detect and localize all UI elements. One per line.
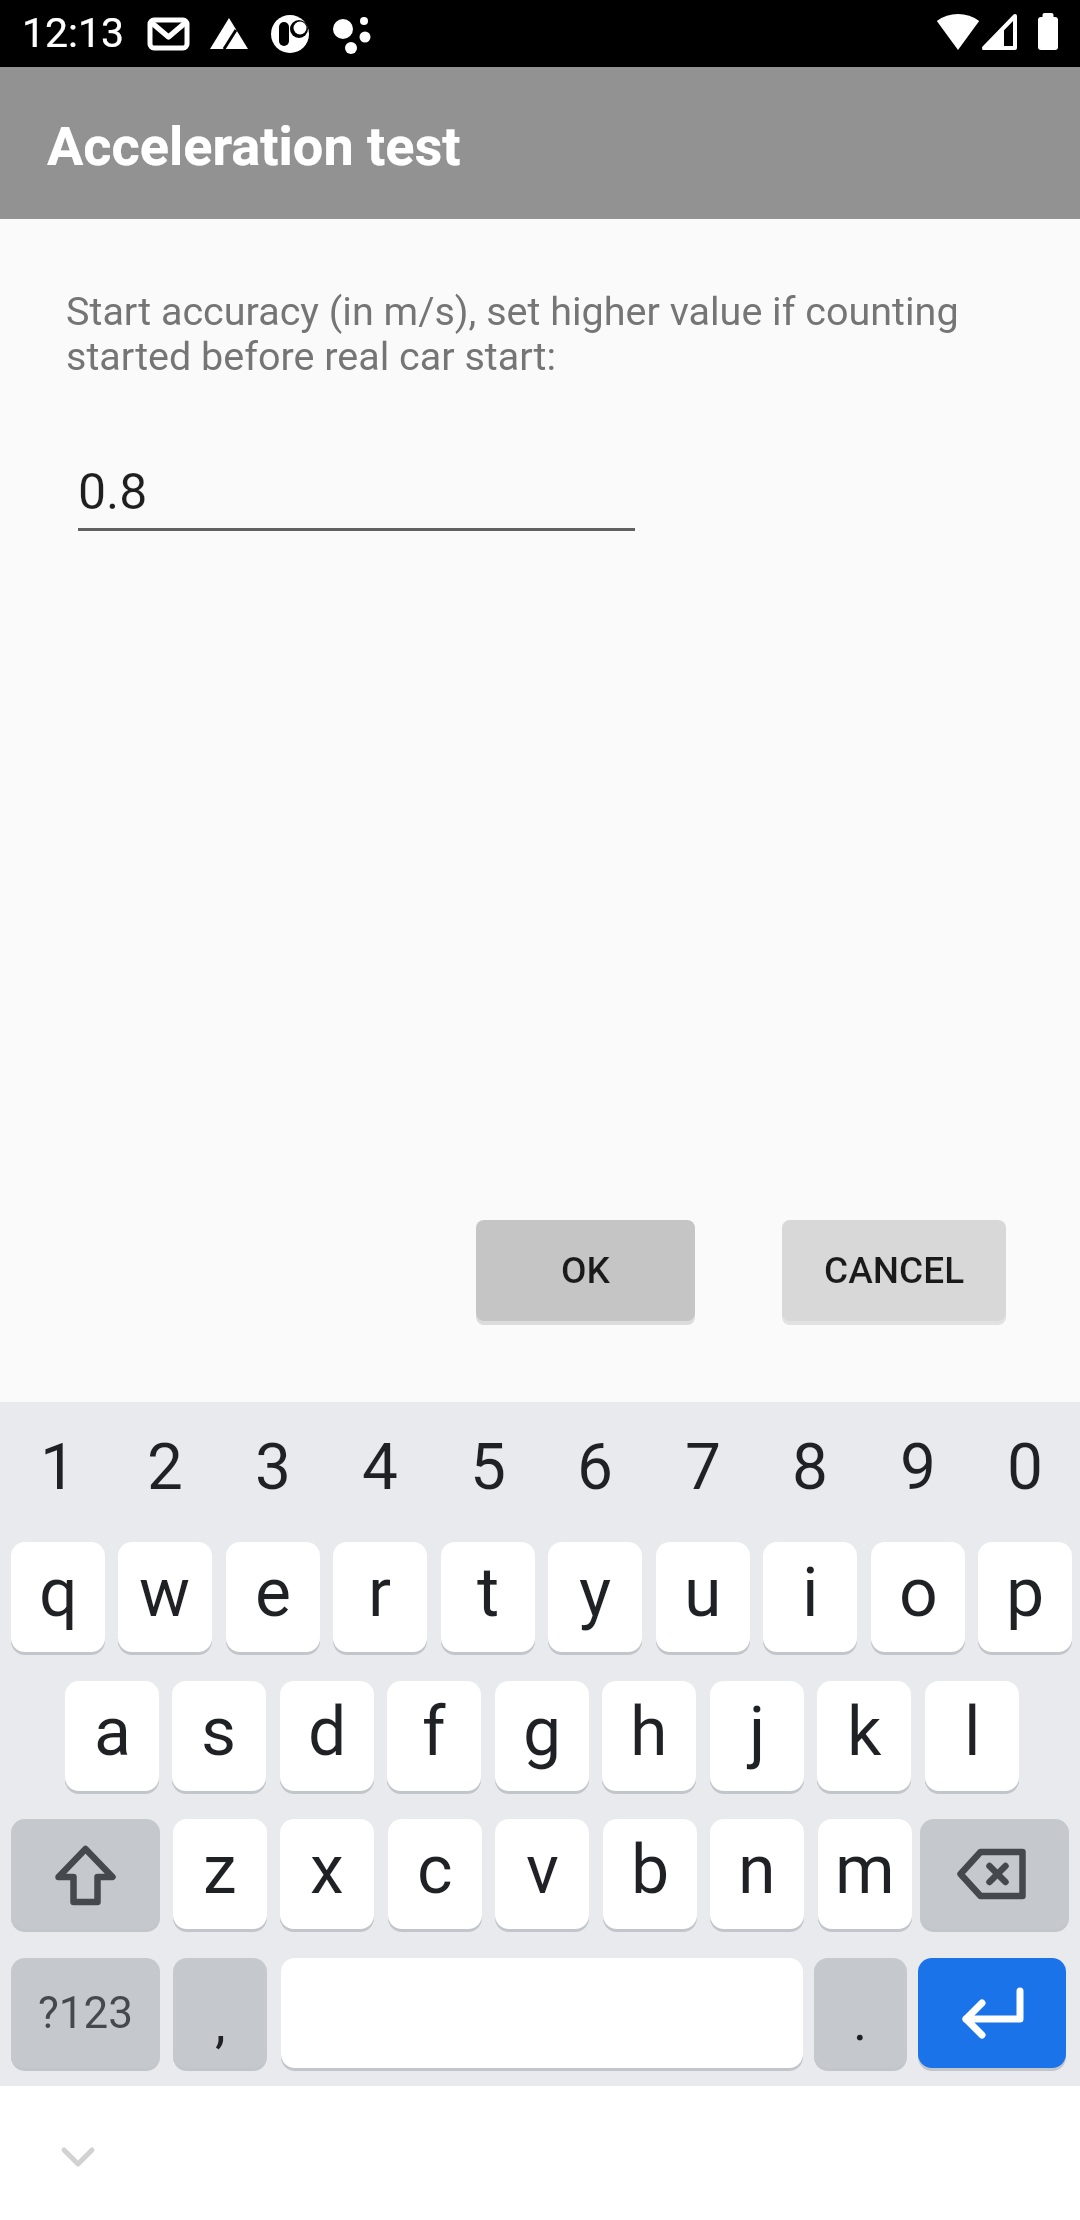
button[interactable]: b	[603, 1819, 697, 1929]
staticText: j	[749, 1692, 766, 1772]
button[interactable]: x	[280, 1819, 374, 1929]
staticText: 9	[900, 1430, 936, 1505]
button[interactable]: r	[333, 1542, 427, 1652]
button[interactable]: o	[871, 1542, 965, 1652]
button[interactable]: 0.8	[66, 440, 636, 540]
button[interactable]: y	[548, 1542, 642, 1652]
button[interactable]: z	[173, 1819, 267, 1929]
staticText: e	[255, 1553, 292, 1633]
button[interactable]: 8	[763, 1412, 857, 1522]
staticText: ,	[215, 1992, 226, 2055]
button[interactable]: l	[925, 1681, 1019, 1791]
button[interactable]: c	[388, 1819, 482, 1929]
staticText: s	[201, 1692, 237, 1772]
button[interactable]: f	[387, 1681, 481, 1791]
staticText: t	[477, 1553, 500, 1633]
staticText: 0.8	[78, 463, 148, 522]
staticText: 3	[255, 1430, 291, 1505]
staticText: z	[203, 1830, 237, 1910]
button[interactable]: .	[814, 1958, 907, 2068]
button[interactable]	[920, 1819, 1069, 1929]
button[interactable]: 0	[978, 1412, 1072, 1522]
staticText: i	[802, 1553, 819, 1633]
button[interactable]	[11, 1819, 160, 1929]
staticText: c	[417, 1830, 453, 1910]
button[interactable]: 5	[441, 1412, 535, 1522]
staticText: 0	[1007, 1430, 1043, 1505]
button[interactable]: OK	[476, 1220, 695, 1321]
staticText: ?123	[38, 1987, 133, 2039]
staticText: n	[738, 1830, 776, 1910]
button[interactable]: t	[441, 1542, 535, 1652]
staticText: v	[526, 1830, 559, 1910]
staticText: q	[39, 1553, 78, 1633]
staticText: 1	[40, 1430, 76, 1505]
button[interactable]: i	[763, 1542, 857, 1652]
button[interactable]: q	[11, 1542, 105, 1652]
staticText: d	[308, 1692, 347, 1772]
button[interactable]: p	[978, 1542, 1072, 1652]
button[interactable]: d	[280, 1681, 374, 1791]
button[interactable]: w	[118, 1542, 212, 1652]
button[interactable]: CANCEL	[782, 1220, 1006, 1321]
button[interactable]: 1	[11, 1412, 105, 1522]
button[interactable]: 4	[333, 1412, 427, 1522]
staticText: Acceleration test	[47, 115, 461, 178]
staticText: l	[964, 1692, 981, 1772]
staticText: 2	[147, 1430, 183, 1505]
staticText: .	[853, 1990, 868, 2053]
staticText: x	[310, 1830, 344, 1910]
staticText: 8	[792, 1430, 828, 1505]
button[interactable]: h	[602, 1681, 696, 1791]
staticText: g	[523, 1692, 562, 1772]
staticText: u	[684, 1553, 722, 1633]
button[interactable]: 2	[118, 1412, 212, 1522]
button[interactable]: ,	[173, 1958, 267, 2068]
staticText: o	[899, 1553, 938, 1633]
staticText: k	[847, 1692, 882, 1772]
staticText: h	[630, 1692, 668, 1772]
staticText: f	[422, 1692, 446, 1772]
staticText: b	[631, 1830, 670, 1910]
button[interactable]: k	[817, 1681, 911, 1791]
staticText: w	[139, 1553, 191, 1633]
button[interactable]: j	[710, 1681, 804, 1791]
button[interactable]	[50, 2134, 106, 2174]
staticText: p	[1006, 1553, 1045, 1633]
staticText: 6	[577, 1430, 613, 1505]
button[interactable]: g	[495, 1681, 589, 1791]
staticText: 12:13	[22, 9, 125, 57]
staticText: a	[94, 1692, 131, 1772]
staticText: Start accuracy (in m/s), set higher valu…	[66, 288, 959, 379]
staticText: r	[368, 1553, 392, 1633]
button[interactable]: u	[656, 1542, 750, 1652]
staticText: CANCEL	[824, 1249, 965, 1292]
button[interactable]: 3	[226, 1412, 320, 1522]
button[interactable]: v	[495, 1819, 589, 1929]
button[interactable]: e	[226, 1542, 320, 1652]
staticText: m	[835, 1830, 895, 1910]
staticText: y	[579, 1553, 612, 1633]
button[interactable]: 9	[871, 1412, 965, 1522]
button[interactable]: 6	[548, 1412, 642, 1522]
button[interactable]: 7	[656, 1412, 750, 1522]
button[interactable]: m	[818, 1819, 912, 1929]
staticText: 7	[685, 1430, 721, 1505]
button[interactable]: a	[65, 1681, 159, 1791]
button[interactable]: s	[172, 1681, 266, 1791]
button[interactable]: ?123	[11, 1958, 160, 2068]
button[interactable]: n	[710, 1819, 804, 1929]
staticText: OK	[561, 1249, 610, 1292]
button[interactable]	[918, 1958, 1066, 2068]
staticText: 4	[362, 1430, 398, 1505]
staticText: 5	[470, 1430, 506, 1505]
